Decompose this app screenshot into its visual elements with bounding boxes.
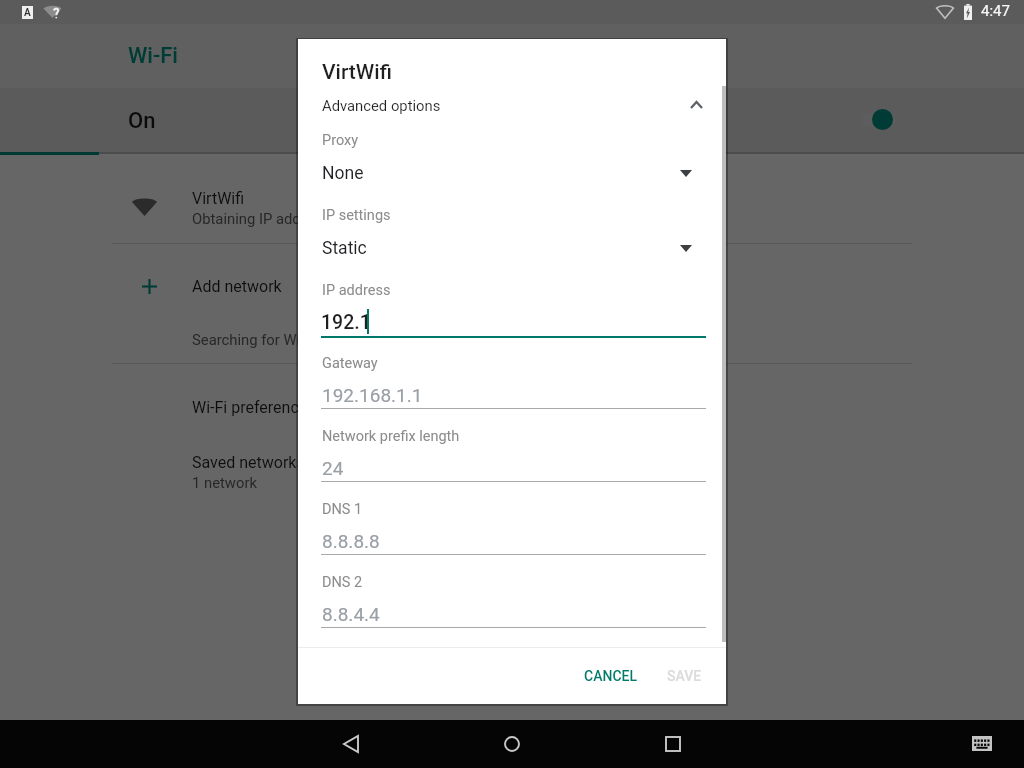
button[interactable]: Advanced options [298,91,726,121]
staticText: CANCEL [584,668,638,684]
staticText: IP address [322,282,391,299]
staticText: 192.168.1.1 [322,384,423,406]
staticText: On [128,108,156,134]
staticText: Wi-Fi preferences [192,398,316,417]
staticText: DNS 2 [322,574,363,591]
staticText: 24 [322,457,344,479]
button[interactable]: Wi-Fi toggle [850,89,910,152]
button[interactable]: Home [464,720,560,768]
staticText: 8.8.8.8 [322,530,380,552]
button[interactable]: CANCEL [578,658,644,694]
button[interactable]: Back [303,720,399,768]
staticText: Gateway [322,355,378,372]
staticText: 192.1 [321,311,371,334]
button[interactable]: Recent apps [625,720,721,768]
staticText: None [322,163,364,184]
staticText: Add network [192,277,282,296]
staticText: VirtWifi [322,60,392,85]
staticText: 8.8.4.4 [322,603,380,625]
staticText: SAVE [667,668,702,684]
staticText: DNS 1 [322,501,363,518]
staticText: 1 network [192,474,257,491]
staticText: Wi-Fi [128,43,178,69]
staticText: Searching for Wi-Fi networks… [192,331,391,348]
staticText: Proxy [322,132,359,149]
staticText: Static [322,238,367,259]
button[interactable]: VirtWifi [0,156,1024,244]
staticText: IP settings [322,207,391,224]
button[interactable]: SAVE [660,658,708,694]
button[interactable]: Switch keyboard [962,724,1002,764]
button[interactable]: Add network [0,244,1024,308]
staticText: Obtaining IP address… [192,210,339,227]
staticText: VirtWifi [192,189,245,208]
button[interactable]: Saved networks [0,437,1024,503]
staticText: Saved networks [192,453,305,472]
staticText: Network prefix length [322,428,460,445]
staticText: 4:47 [981,2,1010,20]
staticText: Advanced options [322,97,441,114]
staticText: A [24,7,31,19]
button[interactable]: Wi-Fi preferences [0,380,1024,435]
